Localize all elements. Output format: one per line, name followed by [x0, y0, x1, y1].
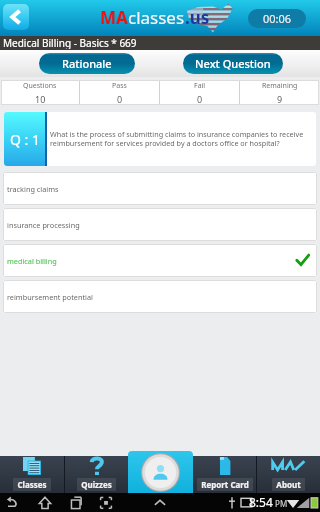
staticText: What is the process of submitting claims…	[50, 129, 304, 149]
button[interactable]: Classes	[0, 456, 64, 493]
staticText: .us	[185, 6, 210, 29]
staticText: 00:06	[263, 11, 292, 26]
button[interactable]: Q : 1	[4, 112, 316, 166]
button[interactable]: Profile	[128, 451, 193, 493]
staticText: medical billing	[7, 256, 57, 266]
staticText: Quizzes	[81, 479, 112, 490]
button[interactable]: 00:06	[248, 9, 306, 28]
staticText: Q : 1	[10, 130, 40, 149]
button[interactable]: Next Question	[183, 53, 283, 74]
staticText: classes	[128, 6, 185, 29]
staticText: MA	[100, 6, 128, 29]
staticText: insurance processing	[7, 220, 80, 230]
staticText: 10	[35, 93, 46, 105]
staticText: 9	[277, 93, 283, 105]
staticText: Next Question	[195, 56, 271, 71]
staticText: reimbursement potential	[7, 292, 93, 302]
button[interactable]: Quizzes	[65, 456, 128, 493]
button[interactable]: medical billing	[3, 244, 317, 277]
staticText: About	[276, 479, 301, 490]
button[interactable]: About	[257, 456, 320, 493]
button[interactable]: reimbursement potential	[3, 280, 317, 313]
button[interactable]: Rationale	[39, 53, 135, 74]
button[interactable]: tracking claims	[3, 172, 317, 205]
staticText: Report Card	[201, 479, 249, 490]
staticText: Fail	[194, 81, 206, 91]
staticText: Rationale	[62, 56, 112, 71]
staticText: Questions	[23, 81, 57, 91]
button[interactable]: insurance processing	[3, 208, 317, 241]
staticText: Pass	[112, 81, 127, 91]
staticText: PM	[273, 498, 288, 509]
staticText: 0	[117, 93, 123, 105]
staticText: 8:54	[249, 494, 273, 510]
staticText: Remaining	[262, 81, 298, 91]
button[interactable]: Back	[3, 4, 29, 30]
staticText: Classes	[17, 479, 47, 490]
staticText: Medical Billing - Basics * 669	[3, 36, 137, 49]
staticText: 0	[197, 93, 203, 105]
button[interactable]: Report Card	[193, 456, 256, 493]
staticText: tracking claims	[7, 184, 59, 194]
